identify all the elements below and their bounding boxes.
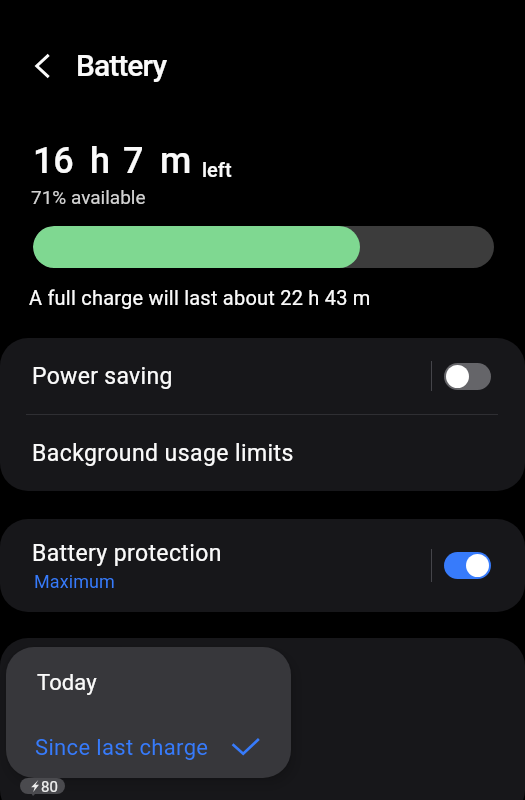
staticText: 71% available	[31, 186, 146, 208]
staticText: Battery	[76, 48, 167, 83]
button[interactable]: Switch off	[444, 363, 491, 390]
staticText: Battery protection	[32, 540, 222, 567]
button[interactable]: Navigate up	[25, 48, 61, 84]
staticText: Power saving	[32, 363, 173, 390]
staticText: h	[90, 140, 110, 182]
staticText: 7	[123, 140, 144, 182]
staticText: 16	[33, 140, 74, 182]
staticText: Background usage limits	[32, 440, 294, 467]
staticText: Since last charge	[35, 735, 209, 761]
button[interactable]: Battery protection	[0, 519, 525, 612]
button[interactable]: Background usage limits	[0, 415, 525, 491]
staticText: left	[202, 158, 232, 181]
button[interactable]: Today	[6, 647, 291, 713]
button[interactable]: Power saving	[0, 338, 525, 414]
staticText: Today	[37, 670, 97, 696]
staticText: m	[160, 140, 192, 182]
staticText: 80	[41, 778, 58, 794]
button[interactable]: Switch on	[444, 552, 491, 579]
staticText: Maximum	[34, 571, 116, 592]
button[interactable]: Since last charge	[6, 713, 291, 778]
staticText: A full charge will last about 22 h 43 m	[29, 286, 371, 309]
